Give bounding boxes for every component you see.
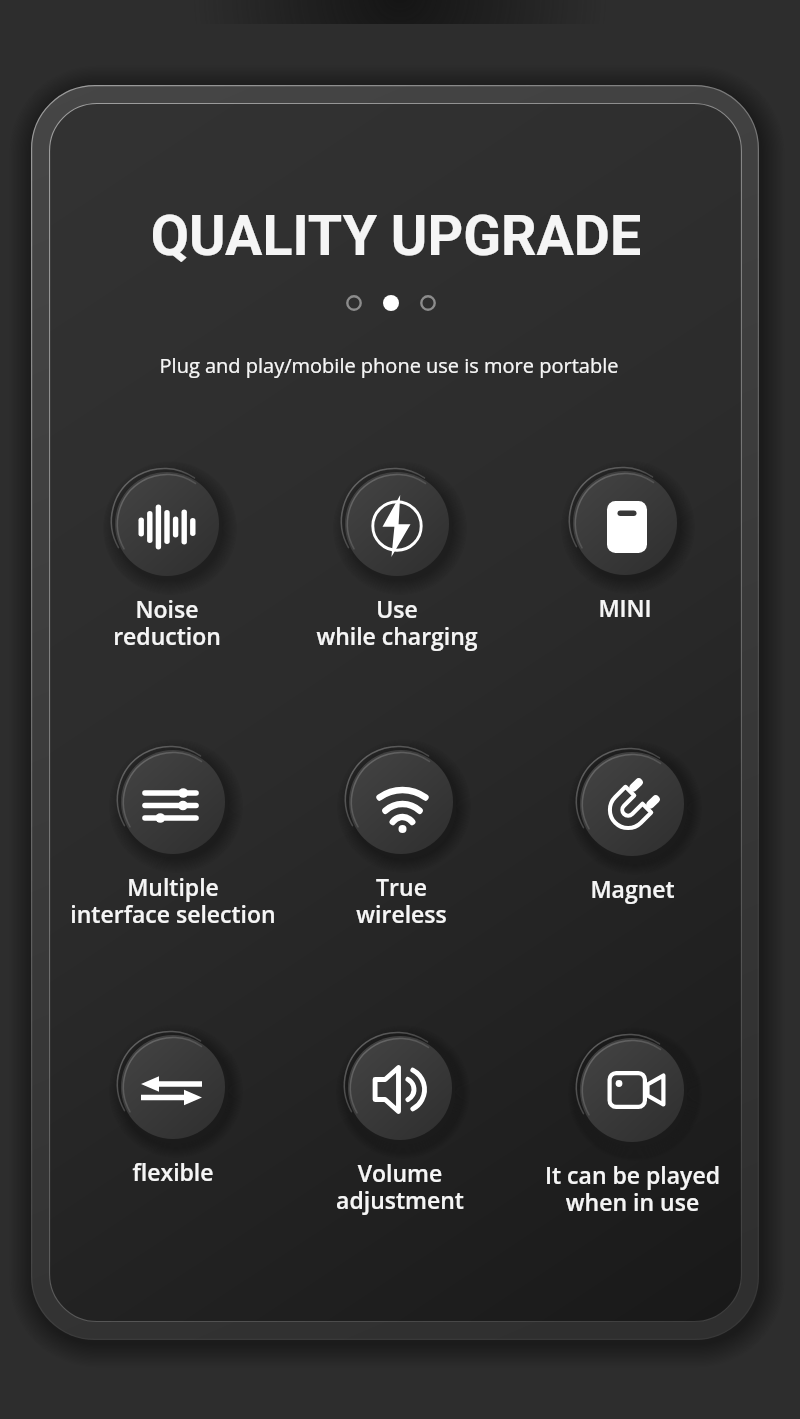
button[interactable]: MINI [573,471,677,575]
button[interactable]: Magnet [580,752,684,856]
staticText: It can be played when in use [545,1159,720,1217]
staticText: Volume adjustment [336,1157,464,1215]
staticText: Plug and play/mobile phone use is more p… [0,352,789,379]
staticText: flexible [132,1156,214,1187]
staticText: True wireless [356,871,447,929]
button[interactable]: It can be played when in use [580,1038,684,1142]
button[interactable]: Go to page 2 [383,295,399,311]
button[interactable]: Multiple interface selection [121,750,225,854]
staticText: Magnet [590,873,675,904]
staticText: Multiple interface selection [70,871,276,929]
button[interactable]: Go to page 3 [420,295,436,311]
button[interactable]: Use while charging [345,472,449,576]
staticText: MINI [598,592,652,623]
button[interactable]: Go to page 1 [346,295,362,311]
staticText: Noise reduction [113,593,221,651]
staticText: QUALITY UPGRADE [0,204,796,269]
staticText: Use while charging [316,593,478,651]
button[interactable]: True wireless [349,750,453,854]
button[interactable]: Volume adjustment [348,1036,452,1140]
button[interactable]: flexible [121,1035,225,1139]
button[interactable]: Noise reduction [115,472,219,576]
